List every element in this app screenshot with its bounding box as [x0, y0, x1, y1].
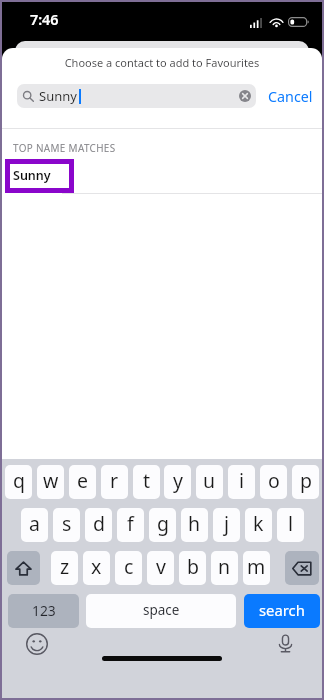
button[interactable]: z	[51, 551, 78, 585]
button[interactable]: l	[277, 508, 304, 542]
button[interactable]: d	[85, 508, 112, 542]
staticText: d	[93, 510, 105, 537]
button[interactable]: v	[147, 551, 174, 585]
button[interactable]: 123	[8, 594, 79, 628]
staticText: v	[156, 553, 166, 580]
button[interactable]: j	[213, 508, 240, 542]
button[interactable]: i	[228, 465, 255, 499]
button[interactable]: Cancel	[256, 87, 313, 106]
staticText: Sunny	[13, 167, 51, 184]
staticText: y	[173, 467, 183, 494]
staticText: Sunny	[39, 87, 77, 105]
button[interactable]: u	[196, 465, 223, 499]
button[interactable]: g	[149, 508, 176, 542]
button[interactable]: b	[179, 551, 206, 585]
button[interactable]: search	[244, 594, 320, 628]
staticText: r	[110, 467, 119, 494]
other: Emoji	[26, 633, 48, 655]
button[interactable]: h	[181, 508, 208, 542]
button[interactable]: a	[21, 508, 48, 542]
staticText: z	[60, 553, 70, 580]
staticText: x	[91, 553, 102, 580]
staticText: i	[239, 467, 245, 494]
button[interactable]: t	[133, 465, 160, 499]
button[interactable]: c	[115, 551, 142, 585]
button[interactable]: o	[260, 465, 287, 499]
button[interactable]: Shift	[7, 551, 40, 585]
button[interactable]: m	[243, 551, 270, 585]
staticText: p	[300, 467, 312, 494]
staticText: space	[143, 601, 180, 619]
other: Dictation	[276, 634, 295, 653]
staticText: Cancel	[268, 87, 313, 106]
staticText: m	[247, 553, 266, 580]
other: Clear text	[239, 90, 251, 102]
button[interactable]: n	[211, 551, 238, 585]
staticText: e	[77, 467, 88, 494]
button[interactable]: s	[53, 508, 80, 542]
staticText: search	[259, 600, 305, 620]
staticText: Choose a contact to add to Favourites	[2, 55, 322, 70]
staticText: h	[188, 510, 201, 537]
button[interactable]: q	[5, 465, 32, 499]
staticText: q	[13, 467, 25, 494]
staticText: b	[187, 553, 199, 580]
staticText: o	[268, 467, 280, 494]
button[interactable]: r	[101, 465, 128, 499]
button[interactable]: Sunny	[17, 84, 256, 108]
button[interactable]: w	[37, 465, 64, 499]
staticText: f	[127, 510, 134, 537]
button[interactable]: space	[86, 594, 236, 628]
staticText: s	[62, 510, 72, 537]
button[interactable]: Sunny	[5, 159, 74, 193]
staticText: j	[224, 510, 230, 537]
button[interactable]: y	[164, 465, 191, 499]
staticText: l	[288, 510, 294, 537]
staticText: w	[43, 467, 59, 494]
staticText: a	[29, 510, 40, 537]
button[interactable]: x	[83, 551, 110, 585]
button[interactable]: e	[69, 465, 96, 499]
button[interactable]: k	[245, 508, 272, 542]
staticText: 123	[32, 601, 56, 620]
button[interactable]: f	[117, 508, 144, 542]
staticText: c	[124, 553, 134, 580]
staticText: u	[203, 467, 216, 494]
staticText: TOP NAME MATCHES	[13, 141, 116, 154]
staticText: k	[253, 510, 264, 537]
button[interactable]: Backspace	[285, 551, 319, 585]
staticText: t	[143, 467, 151, 494]
staticText: n	[218, 553, 231, 580]
button[interactable]: p	[292, 465, 319, 499]
staticText: g	[157, 510, 169, 537]
staticText: 7:46	[30, 10, 59, 29]
